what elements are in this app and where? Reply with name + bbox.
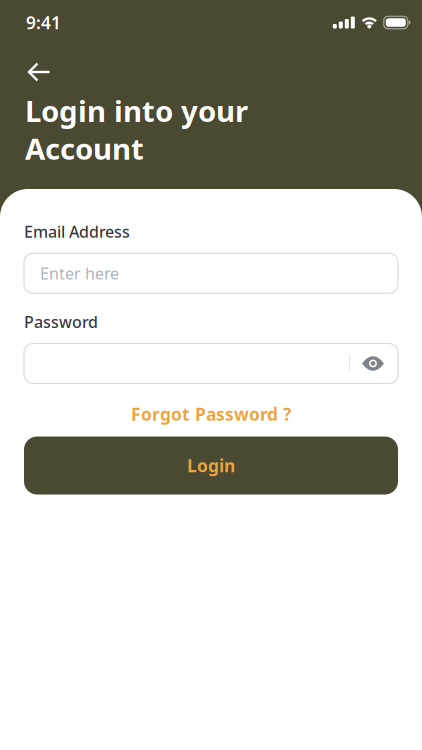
staticText: Email Address — [24, 221, 130, 242]
button[interactable]: Back — [0, 34, 51, 83]
button[interactable]: Show password — [350, 356, 384, 370]
staticText: Login into your — [25, 91, 248, 130]
staticText: Account — [25, 129, 144, 168]
staticText: 9:41 — [26, 11, 61, 34]
button[interactable]: Login — [24, 436, 398, 494]
button[interactable]: Forgot Password ? — [131, 402, 291, 425]
staticText: Password — [24, 311, 98, 332]
staticText: Forgot Password ? — [131, 402, 291, 425]
staticText: Enter here — [40, 263, 119, 284]
staticText: Login — [187, 454, 235, 477]
